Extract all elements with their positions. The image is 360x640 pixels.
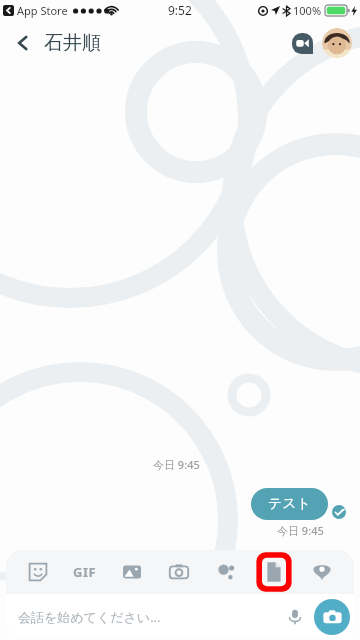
staticText: GIF: [73, 563, 97, 581]
staticText: 9:52: [168, 2, 192, 18]
other: Back: [10, 30, 36, 56]
staticText: テスト: [268, 495, 311, 513]
button[interactable]: GIF: [66, 551, 104, 593]
button[interactable]: Stickers: [19, 551, 57, 593]
button[interactable]: Back: [0, 24, 107, 62]
other: Delivered: [332, 505, 346, 519]
button[interactable]: 会話を始めてください...: [18, 608, 280, 626]
staticText: 今日 9:45: [277, 523, 324, 538]
button[interactable]: Video call: [286, 27, 318, 59]
staticText: 100%: [293, 3, 322, 18]
button[interactable]: File: [254, 551, 294, 593]
button[interactable]: Voice input: [280, 602, 310, 632]
button[interactable]: Profile: [322, 28, 352, 58]
button[interactable]: Camera: [160, 551, 198, 593]
staticText: 会話を始めてください...: [18, 608, 161, 626]
button[interactable]: Location: [303, 551, 341, 593]
button[interactable]: テスト: [251, 488, 328, 520]
staticText: App Store: [17, 3, 68, 18]
button[interactable]: Assistant: [207, 551, 245, 593]
staticText: 今日 9:45: [153, 457, 200, 472]
button[interactable]: Photos: [113, 551, 151, 593]
button[interactable]: Open camera: [314, 599, 350, 635]
staticText: 石井順: [44, 31, 101, 55]
